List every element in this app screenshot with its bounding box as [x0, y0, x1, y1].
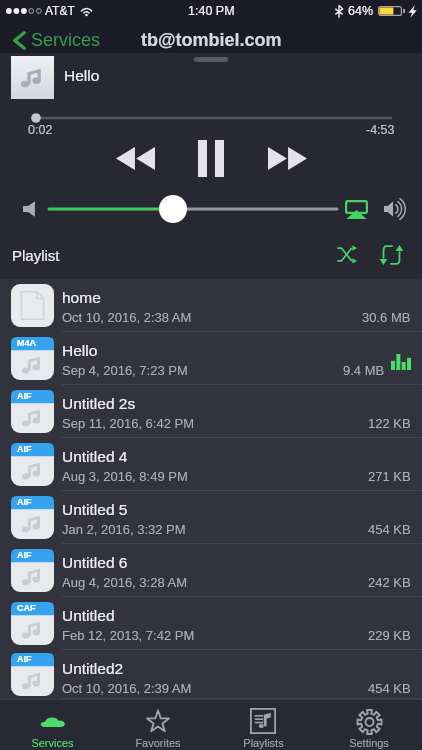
staticText: 122 KB [368, 416, 411, 431]
button[interactable]: AIF [0, 544, 422, 597]
button[interactable]: Repeat [375, 238, 408, 271]
staticText: Oct 10, 2016, 2:39 AM [62, 681, 192, 696]
staticText: 0:02 [28, 123, 53, 137]
staticText: Hello [64, 67, 100, 84]
button[interactable]: M4A [0, 332, 422, 385]
staticText: AIF [17, 391, 32, 401]
staticText: 229 KB [368, 628, 411, 643]
staticText: 454 KB [368, 681, 411, 696]
staticText: Feb 12, 2013, 7:42 PM [62, 628, 195, 643]
button[interactable]: AIF [0, 385, 422, 438]
button[interactable]: AIF [0, 438, 422, 491]
staticText: M4A [17, 338, 37, 348]
button[interactable]: Favorites [105, 700, 210, 750]
staticText: 242 KB [368, 575, 411, 590]
staticText: 64% [348, 4, 374, 18]
staticText: Untitled 2s [62, 395, 136, 412]
staticText: Untitled [62, 607, 115, 624]
staticText: Aug 3, 2016, 8:49 PM [62, 469, 188, 484]
button[interactable]: home [0, 279, 422, 332]
staticText: AIF [17, 444, 32, 454]
staticText: AIF [17, 654, 32, 664]
staticText: Favorites [135, 737, 181, 749]
staticText: Untitled 5 [62, 501, 128, 518]
button[interactable]: Settings [316, 700, 422, 750]
button[interactable]: CAF [0, 597, 422, 650]
staticText: 9.4 MB [343, 363, 385, 378]
staticText: Sep 4, 2016, 7:23 PM [62, 363, 188, 378]
staticText: Aug 4, 2016, 3:28 AM [62, 575, 188, 590]
button[interactable]: Playlists [210, 700, 316, 750]
staticText: AIF [17, 497, 32, 507]
staticText: 1:40 PM [188, 4, 235, 18]
button[interactable]: Pause [184, 136, 238, 180]
staticText: Hello [62, 342, 98, 359]
button[interactable]: Rewind [108, 136, 162, 180]
staticText: 30.6 MB [362, 310, 411, 325]
button[interactable]: AIF [0, 650, 422, 699]
button[interactable]: Fast forward [260, 136, 314, 180]
staticText: Settings [349, 737, 389, 749]
staticText: Untitled 4 [62, 448, 128, 465]
button[interactable]: Services [13, 26, 101, 54]
staticText: Sep 11, 2016, 6:42 PM [62, 416, 195, 431]
staticText: Untitled2 [62, 660, 124, 677]
staticText: tb@tombiel.com [141, 30, 282, 50]
staticText: 271 KB [368, 469, 411, 484]
button[interactable]: Shuffle [330, 238, 363, 271]
button[interactable]: AIF [0, 491, 422, 544]
staticText: Playlists [243, 737, 284, 749]
button[interactable]: Services [0, 700, 105, 750]
staticText: Playlist [12, 247, 60, 264]
staticText: Oct 10, 2016, 2:38 AM [62, 310, 192, 325]
staticText: CAF [17, 603, 36, 613]
staticText: AT&T [45, 4, 75, 17]
button[interactable]: AirPlay [339, 195, 373, 223]
staticText: Services [31, 30, 101, 50]
staticText: home [62, 289, 101, 306]
staticText: AIF [17, 550, 32, 560]
staticText: -4:53 [366, 123, 395, 137]
staticText: Jan 2, 2016, 3:32 PM [62, 522, 186, 537]
staticText: Services [31, 737, 74, 749]
staticText: 454 KB [368, 522, 411, 537]
staticText: Untitled 6 [62, 554, 128, 571]
